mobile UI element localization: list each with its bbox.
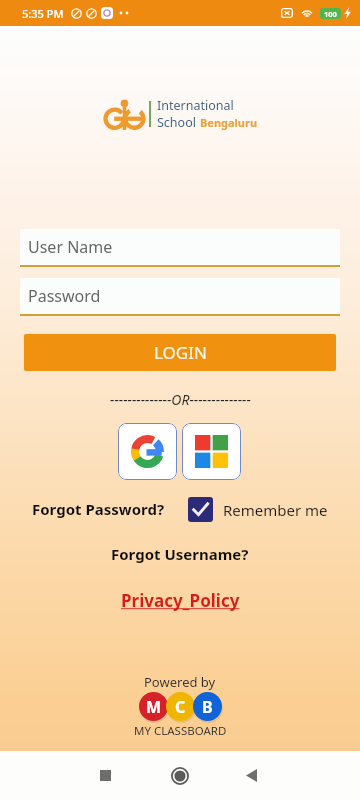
staticText: --------------OR-------------- (110, 390, 251, 409)
staticText: User Name (28, 236, 113, 258)
staticText: B (202, 696, 213, 718)
staticText: School (157, 114, 196, 131)
button[interactable]: Remember me (188, 497, 328, 522)
button[interactable]: Password (20, 278, 340, 314)
button[interactable]: Back (231, 751, 271, 800)
button[interactable]: Privacy_Policy (121, 589, 240, 612)
staticText: MY CLASSBOARD (134, 723, 227, 739)
staticText: Remember me (223, 500, 328, 520)
staticText: 100 (324, 9, 337, 19)
staticText: M (146, 696, 162, 718)
staticText: 5:35 PM (22, 6, 64, 21)
staticText: Powered by (144, 673, 216, 691)
button[interactable]: Home (160, 751, 200, 800)
staticText: Password (28, 285, 101, 307)
button[interactable]: Sign in with Google (118, 423, 177, 480)
staticText: Bengaluru (200, 115, 258, 130)
button[interactable]: Remember me (188, 497, 213, 522)
staticText: International (157, 97, 234, 114)
button[interactable]: Recents (85, 751, 125, 800)
button[interactable]: LOGIN (24, 334, 336, 371)
staticText: LOGIN (154, 341, 207, 364)
staticText: C (175, 696, 186, 718)
button[interactable]: User Name (20, 229, 340, 265)
button[interactable]: Forgot Username? (111, 544, 249, 564)
button[interactable]: Sign in with Microsoft (182, 423, 241, 480)
button[interactable]: Forgot Password? (32, 499, 165, 519)
